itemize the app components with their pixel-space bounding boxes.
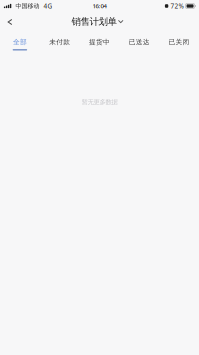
staticText: 72% <box>170 2 183 10</box>
button[interactable]: 未付款 <box>40 31 80 51</box>
staticText: 全部 <box>13 38 27 46</box>
staticText: 提货中 <box>89 38 110 46</box>
staticText: 4G <box>44 2 53 10</box>
button[interactable]: 全部 <box>0 31 40 51</box>
staticText: 已送达 <box>129 38 150 46</box>
button[interactable]: 提货中 <box>80 31 119 51</box>
button[interactable]: 已送达 <box>119 31 159 51</box>
button[interactable]: 返回 <box>0 14 20 30</box>
staticText: 已关闭 <box>169 38 190 46</box>
staticText: 16:04 <box>92 2 106 10</box>
button[interactable]: 销售计划单 <box>71 14 128 29</box>
staticText: 暂无更多数据 <box>81 98 117 106</box>
staticText: 中国移动 <box>16 2 40 10</box>
staticText: 销售计划单 <box>71 15 116 27</box>
button[interactable]: 已关闭 <box>159 31 199 51</box>
staticText: 未付款 <box>49 38 70 46</box>
